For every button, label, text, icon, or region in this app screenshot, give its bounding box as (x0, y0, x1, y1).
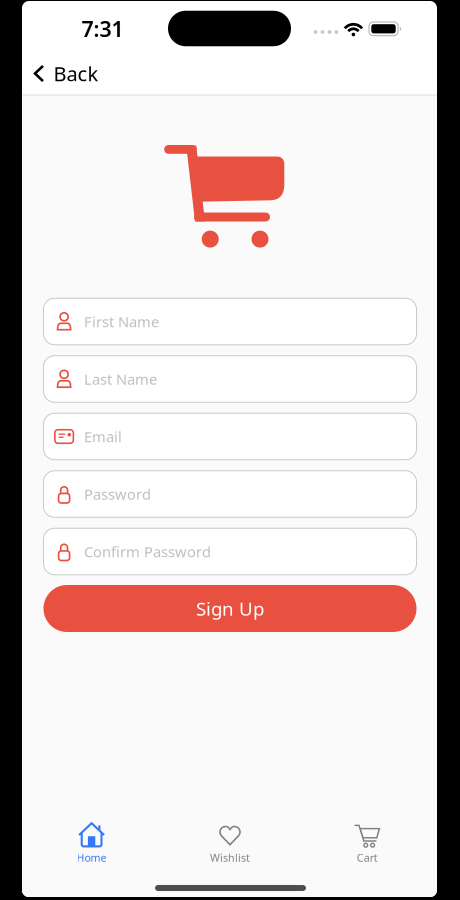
button[interactable]: Password (43, 471, 416, 517)
button[interactable]: Sign Up (43, 585, 416, 632)
button[interactable]: Cart (312, 809, 422, 873)
button[interactable]: Home (37, 809, 147, 873)
button[interactable]: Back (22, 54, 106, 94)
staticText: First Name (84, 312, 159, 331)
button[interactable]: Email (43, 413, 416, 460)
staticText: Sign Up (196, 596, 264, 621)
staticText: 7:31 (81, 15, 123, 43)
staticText: Home (77, 851, 107, 865)
staticText: Last Name (84, 369, 157, 389)
staticText: Password (84, 484, 151, 504)
staticText: Email (84, 427, 122, 446)
staticText: Cart (357, 851, 378, 865)
staticText: Confirm Password (84, 542, 211, 561)
button[interactable]: First Name (43, 298, 416, 345)
staticText: Back (53, 60, 98, 87)
button[interactable]: Wishlist (175, 809, 285, 873)
button[interactable]: Last Name (43, 356, 416, 402)
staticText: Wishlist (210, 851, 250, 865)
button[interactable]: Confirm Password (43, 528, 416, 575)
